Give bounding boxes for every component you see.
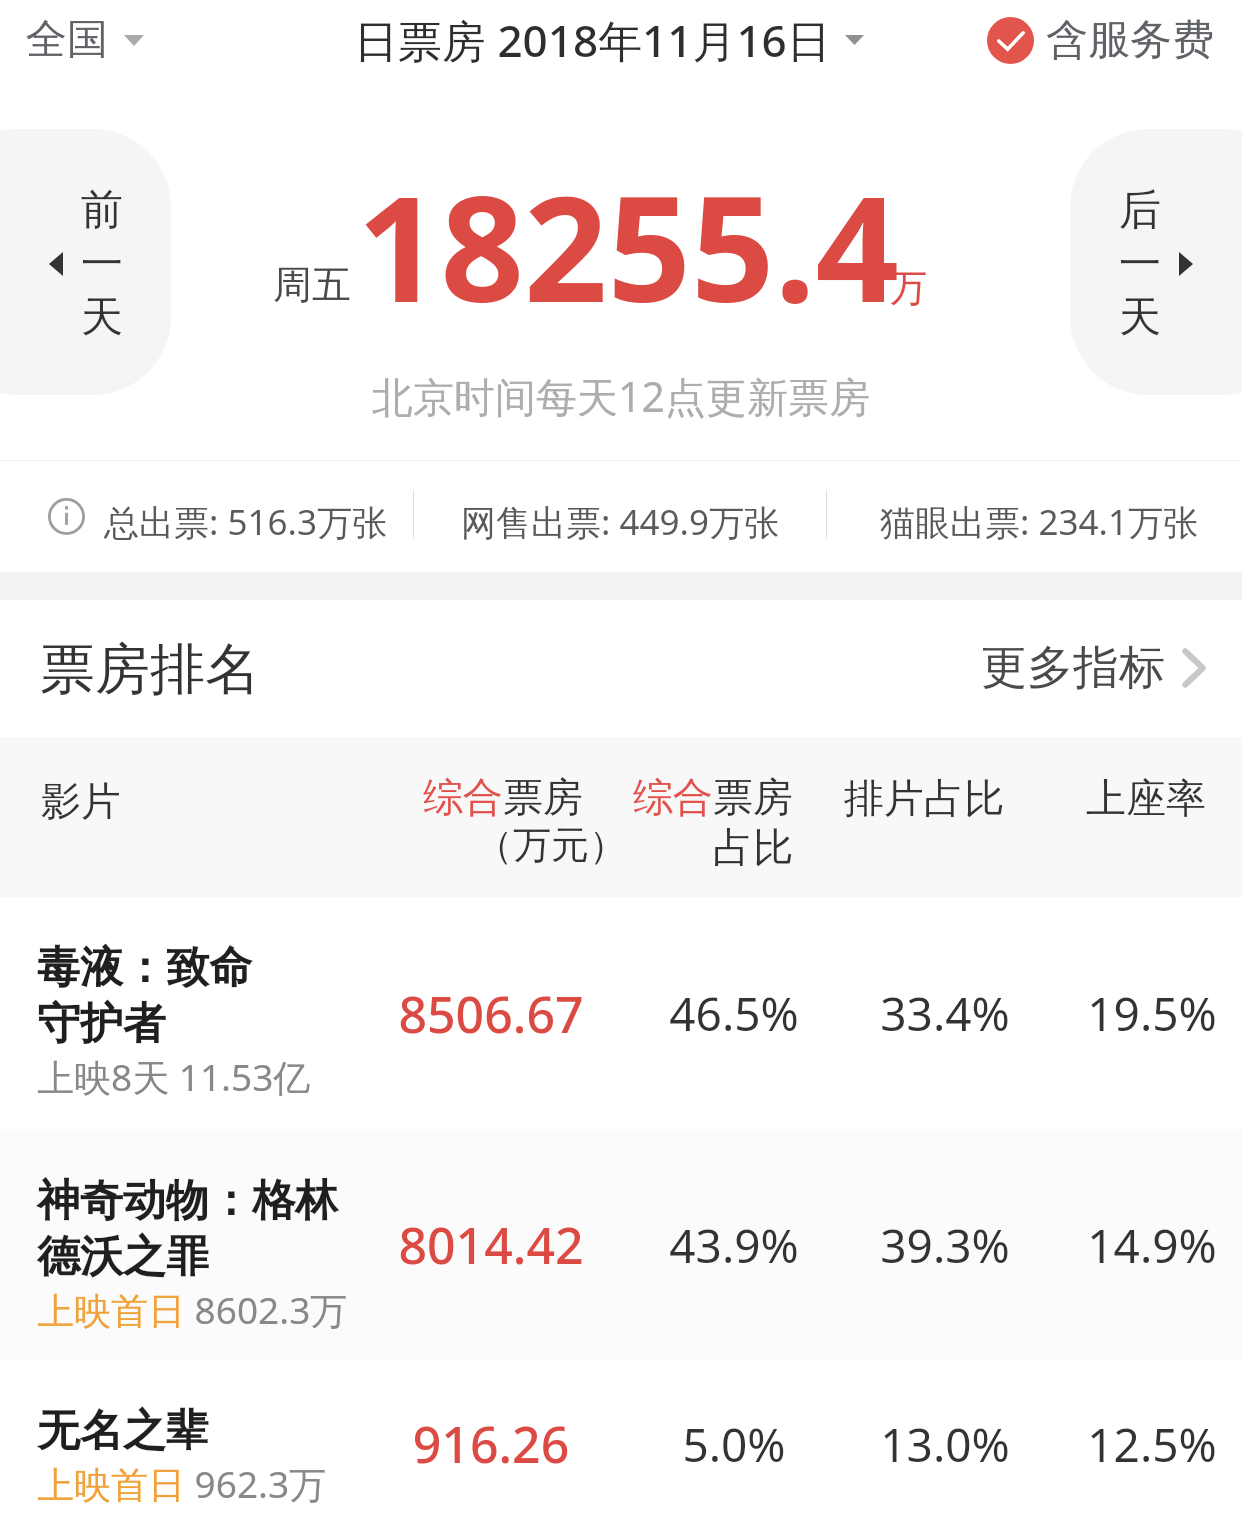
staticText: 12.5% (1042, 1413, 1242, 1476)
staticText: 13.0% (835, 1413, 1055, 1476)
staticText: 猫眼出票: 234.1万张 (880, 498, 1198, 546)
staticText: 上映首日 962.3万 (37, 1458, 327, 1509)
staticText: 守护者 (37, 997, 166, 1051)
staticText: 上映首日 8602.3万 (37, 1284, 348, 1335)
staticText: 北京时间每天12点更新票房 (0, 368, 1242, 424)
staticText: 后 一 天 (1119, 184, 1161, 343)
staticText: 含服务费 (1046, 14, 1214, 67)
staticText: 前 一 天 (81, 184, 123, 343)
staticText: 综合票房 (343, 772, 583, 822)
staticText: 全国 (26, 14, 108, 66)
button[interactable]: 无名之辈 (0, 1360, 1242, 1528)
button[interactable]: 含服务费 (977, 4, 1242, 77)
staticText: 德沃之罪 (37, 1230, 209, 1284)
staticText: （万元） (475, 821, 627, 869)
staticText: 综合票房 (633, 772, 793, 822)
staticText: 33.4% (835, 982, 1055, 1045)
staticText: 上座率 (1086, 773, 1206, 823)
staticText: 46.5% (624, 982, 844, 1045)
staticText: 万 (889, 264, 927, 312)
staticText: 排片占比 (844, 773, 1004, 823)
staticText: 占比 (713, 822, 793, 872)
staticText: 上映8天 11.53亿 (37, 1051, 311, 1102)
staticText: 更多指标 (981, 639, 1165, 697)
staticText: 无名之辈 (37, 1404, 209, 1458)
staticText: 39.3% (835, 1214, 1055, 1277)
staticText: 影片 (41, 776, 121, 826)
staticText: 周五 (273, 260, 351, 309)
staticText: 网售出票: 449.9万张 (461, 498, 779, 546)
button[interactable]: 日票房 2018年11月16日 (350, 0, 868, 80)
staticText: 18255.4 (357, 146, 900, 345)
button[interactable]: 后一天 (1070, 129, 1242, 395)
staticText: 总出票: 516.3万张 (104, 498, 387, 546)
staticText: 8506.67 (381, 980, 601, 1048)
staticText: 8014.42 (381, 1211, 601, 1279)
button[interactable]: 全国 (0, 4, 158, 76)
staticText: 神奇动物：格林 (37, 1174, 338, 1228)
staticText: 票房排名 (40, 635, 260, 704)
staticText: 毒液：致命 (37, 941, 252, 995)
staticText: 14.9% (1042, 1214, 1242, 1277)
button[interactable]: 前一天 (0, 129, 171, 395)
button[interactable]: 毒液：致命 (0, 897, 1242, 1130)
button[interactable]: 更多指标 (971, 627, 1242, 709)
staticText: 916.26 (381, 1410, 601, 1478)
staticText: 43.9% (624, 1214, 844, 1277)
button[interactable]: 神奇动物：格林 (0, 1130, 1242, 1360)
staticText: 19.5% (1042, 982, 1242, 1045)
staticText: 5.0% (624, 1413, 844, 1476)
staticText: 日票房 2018年11月16日 (354, 10, 831, 70)
